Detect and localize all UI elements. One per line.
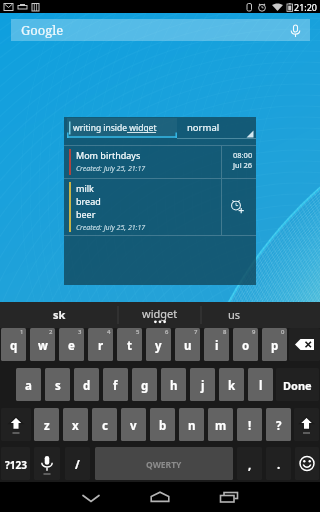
staticText: Jul 26	[233, 160, 253, 170]
staticText: Created: July 25, 21:17	[76, 223, 146, 233]
staticText: t	[127, 338, 132, 354]
staticText: s	[55, 378, 61, 394]
staticText: p	[271, 338, 279, 354]
button[interactable]: x	[63, 408, 88, 441]
staticText: 1	[20, 328, 24, 336]
button[interactable]: QWERTY	[95, 447, 233, 480]
staticText: Created: July 25, 21:17	[76, 164, 146, 174]
button[interactable]: e	[59, 328, 84, 361]
staticText: milk	[76, 182, 94, 194]
button[interactable]: sk	[0, 302, 118, 328]
button[interactable]: y	[146, 328, 171, 361]
staticText: Done	[283, 378, 312, 393]
staticText: n	[188, 418, 196, 434]
button[interactable]: u	[175, 328, 200, 361]
button[interactable]: ?123	[1, 447, 30, 480]
staticText: f	[113, 378, 118, 394]
staticText: y	[155, 338, 162, 354]
staticText: 8	[223, 328, 227, 336]
button[interactable]: ?	[266, 408, 291, 441]
button[interactable]: writing inside widget	[67, 118, 177, 138]
button[interactable]: widget	[118, 302, 201, 328]
button[interactable]: a	[16, 368, 41, 401]
button[interactable]: c	[92, 408, 117, 441]
staticText: a	[25, 378, 32, 394]
staticText: /	[75, 457, 80, 473]
button[interactable]: normal	[177, 117, 256, 139]
staticText: 08:00	[233, 150, 253, 160]
staticText: Mom birthdays	[76, 149, 141, 161]
button[interactable]: Shift	[1, 408, 31, 441]
button[interactable]: Hide keyboard	[71, 482, 111, 512]
staticText: Google	[21, 21, 64, 39]
button[interactable]: us	[201, 302, 320, 328]
staticText: i	[215, 338, 219, 354]
staticText: bread	[76, 195, 101, 207]
staticText: normal	[187, 121, 220, 134]
staticText: 2	[49, 328, 53, 336]
staticText: ,	[248, 457, 252, 473]
staticText: 6	[165, 328, 169, 336]
staticText: 7	[194, 328, 198, 336]
button[interactable]: milk	[64, 179, 256, 235]
button[interactable]: d	[74, 368, 99, 401]
staticText: e	[68, 338, 75, 354]
staticText: us	[228, 307, 241, 322]
button[interactable]: w	[30, 328, 55, 361]
staticText: writing inside widget	[73, 122, 157, 134]
button[interactable]: Home	[140, 482, 180, 512]
staticText: k	[228, 378, 236, 394]
button[interactable]: Mom birthdays	[64, 146, 256, 178]
staticText: w	[38, 338, 48, 354]
button[interactable]: Shift	[294, 408, 319, 441]
button[interactable]: b	[150, 408, 175, 441]
button[interactable]: f	[103, 368, 128, 401]
staticText: u	[184, 338, 192, 354]
button[interactable]: Backspace	[289, 328, 320, 361]
button[interactable]: j	[190, 368, 215, 401]
staticText: 21:20	[294, 1, 318, 13]
button[interactable]: t	[117, 328, 142, 361]
button[interactable]: g	[132, 368, 157, 401]
button[interactable]: k	[219, 368, 244, 401]
staticText: x	[72, 418, 79, 434]
button[interactable]: Emoji	[295, 447, 319, 480]
button[interactable]: .	[266, 447, 291, 480]
button[interactable]: Recent apps	[209, 482, 249, 512]
button[interactable]: Voice input	[34, 447, 60, 480]
button[interactable]: ,	[237, 447, 262, 480]
staticText: l	[259, 378, 263, 394]
button[interactable]: h	[161, 368, 186, 401]
staticText: ?123	[5, 458, 27, 472]
staticText: m	[215, 418, 227, 434]
button[interactable]: v	[121, 408, 146, 441]
staticText: c	[102, 418, 108, 434]
staticText: 9	[252, 328, 256, 336]
staticText: 3	[78, 328, 82, 336]
staticText: b	[159, 418, 167, 434]
button[interactable]: Done	[276, 368, 319, 401]
button[interactable]: !	[237, 408, 262, 441]
button[interactable]: s	[45, 368, 70, 401]
staticText: o	[242, 338, 250, 354]
button[interactable]: n	[179, 408, 204, 441]
staticText: 4	[107, 328, 111, 336]
button[interactable]: z	[34, 408, 59, 441]
staticText: !	[248, 418, 252, 434]
button[interactable]: l	[248, 368, 273, 401]
staticText: v	[130, 418, 137, 434]
staticText: j	[201, 378, 205, 394]
button[interactable]: Google	[11, 19, 310, 41]
button[interactable]: r	[88, 328, 113, 361]
staticText: r	[98, 338, 104, 354]
staticText: q	[10, 338, 18, 354]
button[interactable]: o	[233, 328, 258, 361]
staticText: 0	[281, 328, 285, 336]
other: Add alarm	[230, 199, 246, 215]
button[interactable]: m	[208, 408, 233, 441]
button[interactable]: i	[204, 328, 229, 361]
button[interactable]: q	[1, 328, 26, 361]
button[interactable]: /	[65, 447, 90, 480]
button[interactable]: p	[262, 328, 287, 361]
staticText: ?	[276, 418, 282, 434]
